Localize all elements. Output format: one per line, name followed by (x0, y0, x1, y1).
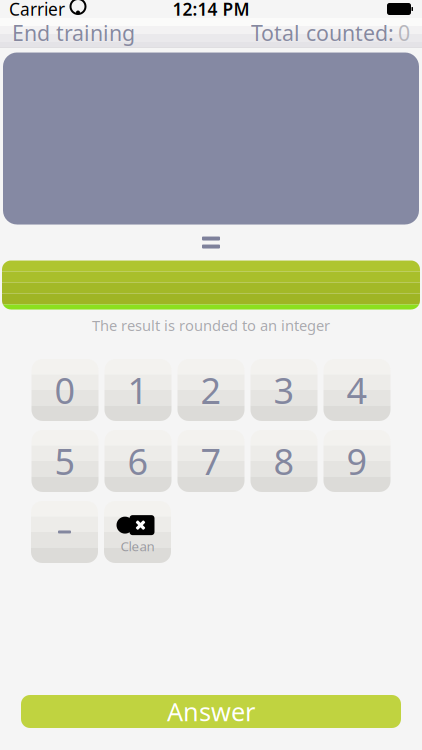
staticText: Total counted: (251, 19, 394, 47)
button[interactable]: 2 (177, 359, 244, 421)
staticText: 3 (273, 366, 294, 414)
staticText: The result is rounded to an integer (92, 315, 330, 335)
staticText: 0 (398, 19, 410, 47)
button[interactable]: 5 (31, 430, 98, 492)
button[interactable]: 9 (323, 430, 390, 492)
button[interactable]: Total counted: (239, 18, 422, 47)
staticText: 5 (54, 437, 75, 485)
staticText: End training (12, 19, 135, 47)
staticText: Answer (167, 695, 255, 728)
staticText: 8 (273, 437, 294, 485)
button[interactable]: Clean (104, 501, 171, 563)
button[interactable]: 8 (250, 430, 317, 492)
staticText: 1 (127, 366, 148, 414)
staticText (65, 0, 70, 20)
button[interactable]: Answer (21, 695, 401, 728)
button[interactable]: End training (0, 18, 147, 47)
staticText: Carrier (9, 0, 65, 20)
button[interactable]: 4 (323, 359, 390, 421)
staticText: 2 (200, 366, 221, 414)
button[interactable]: Minus (31, 501, 98, 563)
staticText: 12:14 PM (172, 0, 249, 20)
button[interactable]: 6 (104, 430, 171, 492)
staticText: 6 (127, 437, 148, 485)
staticText: Clean (120, 537, 154, 555)
button[interactable]: 3 (250, 359, 317, 421)
staticText: 4 (346, 366, 367, 414)
staticText: 0 (54, 366, 75, 414)
staticText: 7 (200, 437, 221, 485)
staticText: 9 (346, 437, 367, 485)
button[interactable]: 0 (31, 359, 98, 421)
button[interactable]: 7 (177, 430, 244, 492)
button[interactable]: 1 (104, 359, 171, 421)
